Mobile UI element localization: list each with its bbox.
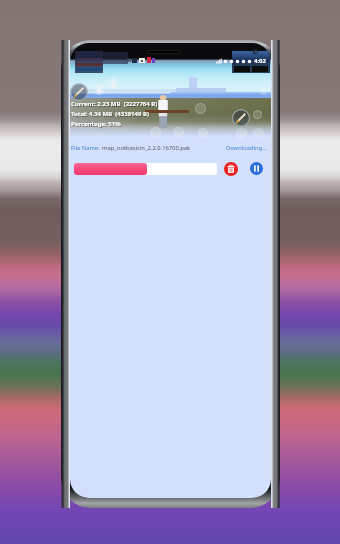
staticText: File Name: [71, 144, 102, 152]
staticText: Current: 2.23 MB (2227764 B) [72, 101, 159, 109]
button[interactable]: Delete download [224, 162, 238, 176]
staticText: Downloading... [226, 144, 267, 152]
staticText: Total: 4.34 MB (4338149 B) [71, 110, 149, 118]
staticText: Current: 2.23 MB (2227764 B) [71, 100, 158, 108]
staticText: map_notbasicin_2.2.0.16700.pak [102, 144, 191, 152]
staticText: Total: 4.34 MB (4338149 B) [72, 111, 150, 119]
staticText: Percentage: 51% [71, 120, 121, 128]
staticText: 4:02 [254, 57, 266, 65]
staticText: Percentage: 51% [72, 121, 122, 129]
button[interactable]: Pause download [250, 162, 263, 175]
button[interactable]: Download progress [74, 163, 217, 175]
